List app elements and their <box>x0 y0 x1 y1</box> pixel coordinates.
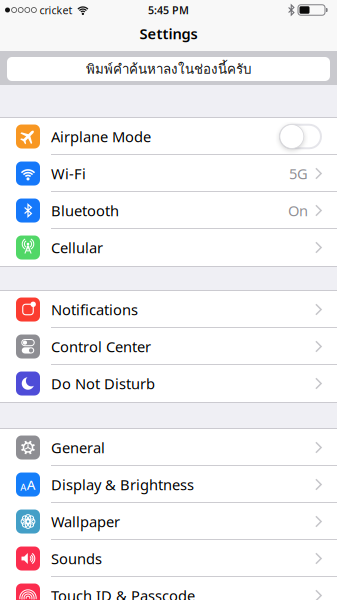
button[interactable]: Wallpaper <box>0 503 337 540</box>
button[interactable]: General <box>0 429 337 466</box>
button[interactable]: Do Not Disturb <box>0 365 337 402</box>
staticText: พิมพ์คำค้นหาลงในช่องนี้ครับ <box>86 59 251 79</box>
staticText: Settings <box>139 24 197 43</box>
staticText: Do Not Disturb <box>51 374 155 393</box>
staticText: 5G <box>289 164 308 183</box>
button[interactable]: Bluetooth <box>0 192 337 229</box>
button[interactable]: Sounds <box>0 540 337 577</box>
staticText: Control Center <box>51 337 151 356</box>
staticText: Notifications <box>51 300 138 319</box>
button[interactable]: Control Center <box>0 328 337 365</box>
staticText: A <box>27 476 36 493</box>
staticText: Touch ID & Passcode <box>51 586 195 600</box>
staticText: Sounds <box>51 549 102 568</box>
button[interactable]: Cellular <box>0 229 337 266</box>
staticText: Bluetooth <box>51 201 119 220</box>
staticText: Airplane Mode <box>51 127 151 146</box>
button[interactable]: Notifications <box>0 291 337 328</box>
staticText: General <box>51 438 105 457</box>
button[interactable]: A <box>0 466 337 503</box>
staticText: 5:45 PM <box>148 3 189 17</box>
staticText: Cellular <box>51 238 103 257</box>
staticText: Wi-Fi <box>51 164 86 183</box>
button[interactable]: Airplane Mode <box>0 118 337 155</box>
staticText: A <box>20 481 26 493</box>
button[interactable]: Wi-Fi <box>0 155 337 192</box>
button[interactable]: Touch ID & Passcode <box>0 577 337 600</box>
staticText: Wallpaper <box>51 512 120 531</box>
staticText: On <box>288 201 308 220</box>
button[interactable]: พิมพ์คำค้นหาลงในช่องนี้ครับ <box>0 51 337 85</box>
staticText: cricket <box>39 3 72 17</box>
staticText: Display & Brightness <box>51 475 194 494</box>
